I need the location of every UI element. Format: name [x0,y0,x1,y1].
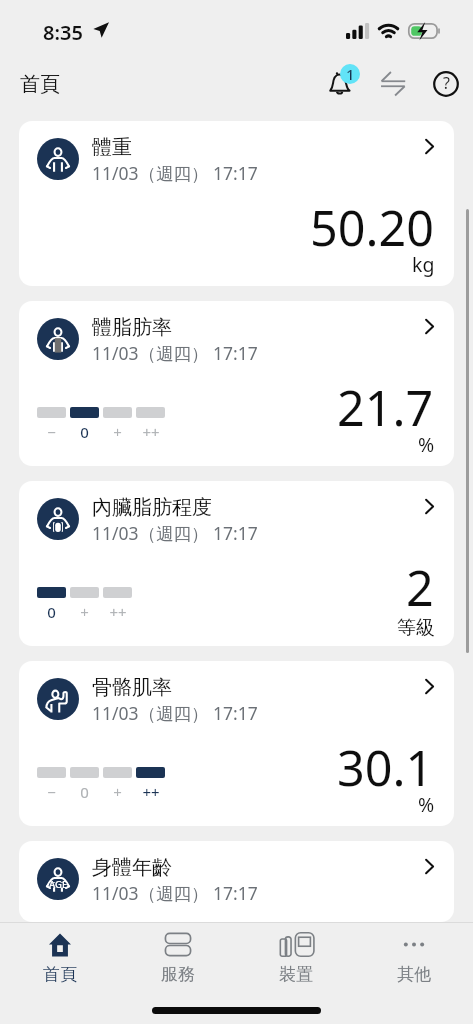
staticText: 內臟脂肪程度 [92,495,212,520]
staticText: ? [443,72,450,94]
staticText: 0 [47,602,56,622]
button[interactable]: 其他 [355,923,473,983]
staticText: 裝置 [279,964,313,983]
staticText: 身體年齡 [92,855,172,880]
staticText: 其他 [397,964,431,983]
staticText: 體重 [92,135,132,160]
staticText: + [113,422,122,442]
staticText: 首頁 [20,72,60,97]
button[interactable]: AGE [19,841,454,922]
staticText: − [47,782,56,802]
staticText: 骨骼肌率 [92,675,172,700]
staticText: 等級 [397,616,435,640]
button[interactable]: 體脂肪率 [19,301,454,466]
staticText: 11/03（週四） 17:17 [92,881,258,905]
staticText: + [80,602,89,622]
staticText: 21.7 [337,374,434,440]
staticText: ++ [142,422,160,442]
staticText: 11/03（週四） 17:17 [92,521,258,545]
staticText: 2 [406,554,434,620]
staticText: % [418,791,435,818]
staticText: 11/03（週四） 17:17 [92,341,258,365]
staticText: 1 [346,64,355,84]
staticText: 0 [80,422,89,442]
button[interactable]: 骨骼肌率 [19,661,454,826]
button[interactable]: Sync [370,60,416,106]
staticText: 體脂肪率 [92,315,172,340]
staticText: ++ [109,602,127,622]
staticText: 50.20 [310,194,434,260]
button[interactable]: 內臟脂肪程度 [19,481,454,646]
staticText: − [47,422,56,442]
staticText: 首頁 [43,964,77,983]
button[interactable]: 服務 [119,923,237,983]
button[interactable]: 首頁 [0,923,119,983]
staticText: 0 [80,782,89,802]
staticText: 8:35 [43,19,83,46]
staticText: % [418,431,435,458]
button[interactable]: 裝置 [237,923,355,983]
button[interactable]: 體重 [19,121,454,286]
staticText: 11/03（週四） 17:17 [92,701,258,725]
staticText: ++ [142,782,160,802]
button[interactable]: Notifications [317,62,363,108]
staticText: 30.1 [337,734,434,800]
button[interactable]: Help [423,61,469,107]
staticText: 11/03（週四） 17:17 [92,161,258,185]
staticText: + [113,782,122,802]
staticText: kg [412,251,435,278]
staticText: AGE [49,878,68,891]
staticText: 服務 [161,964,195,983]
